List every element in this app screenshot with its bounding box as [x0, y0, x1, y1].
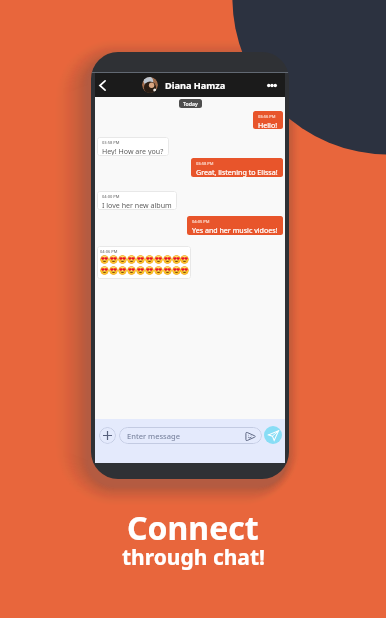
button[interactable]: 03:56 PM: [253, 111, 283, 129]
staticText: 03:58 PM: [102, 140, 120, 145]
staticText: I love her new album: [102, 200, 172, 210]
button[interactable]: 03:58 PM: [191, 158, 283, 177]
staticText: Diana Hamza: [165, 79, 226, 92]
button[interactable]: 04:00 PM: [97, 191, 177, 210]
staticText: Today: [183, 100, 198, 107]
button[interactable]: 04:06 PM: [97, 246, 191, 279]
button[interactable]: Add attachment: [99, 427, 116, 444]
staticText: 04:06 PM: [100, 249, 118, 254]
staticText: 03:58 PM: [196, 161, 214, 166]
staticText: Hello!: [258, 120, 278, 129]
button[interactable]: Enter message: [119, 427, 262, 444]
button[interactable]: 04:05 PM: [187, 216, 283, 235]
staticText: Hey! How are you?: [102, 146, 164, 156]
staticText: 03:56 PM: [258, 114, 276, 119]
button[interactable]: Back: [96, 73, 109, 97]
button[interactable]: Send: [264, 426, 282, 444]
staticText: Great, listening to Elissa!: [196, 167, 278, 177]
button[interactable]: More options: [261, 73, 283, 97]
staticText: Connect: [127, 506, 259, 550]
staticText: Enter message: [127, 431, 180, 441]
staticText: 04:05 PM: [192, 219, 210, 224]
button[interactable]: 03:58 PM: [97, 137, 169, 156]
staticText: through chat!: [122, 543, 265, 572]
staticText: 04:00 PM: [102, 194, 120, 199]
staticText: Yes and her music vidoes!: [192, 225, 278, 235]
